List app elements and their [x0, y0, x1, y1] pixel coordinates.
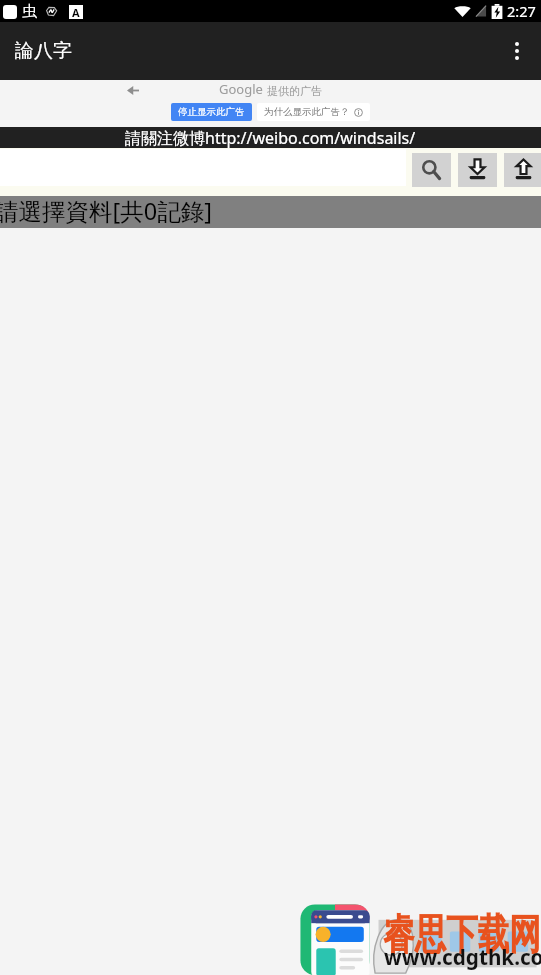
staticText: 睿思下载网: [383, 909, 540, 962]
staticText: 为什么显示此广告？: [264, 106, 350, 118]
button[interactable]: 停止显示此广告: [171, 103, 252, 121]
button[interactable]: Upload: [504, 153, 541, 187]
staticText: 停止显示此广告: [178, 106, 245, 118]
staticText: 論八字: [15, 39, 72, 63]
staticText: www.cdgthk.com: [384, 941, 541, 975]
button[interactable]: Back: [123, 80, 143, 100]
staticText: 2:27: [507, 1, 536, 21]
staticText: A: [72, 5, 80, 19]
staticText: 請選擇資料[共0記錄]: [0, 195, 212, 227]
staticText: 虫: [22, 2, 37, 21]
button[interactable]: More options: [493, 27, 541, 75]
button[interactable]: Search: [412, 153, 451, 187]
button[interactable]: Download: [458, 153, 497, 187]
staticText: 請關注微博http://weibo.com/windsails/: [125, 127, 416, 148]
staticText: Google: [219, 80, 263, 98]
staticText: 提供的广告: [267, 84, 322, 98]
button[interactable]: 为什么显示此广告？: [257, 103, 370, 121]
